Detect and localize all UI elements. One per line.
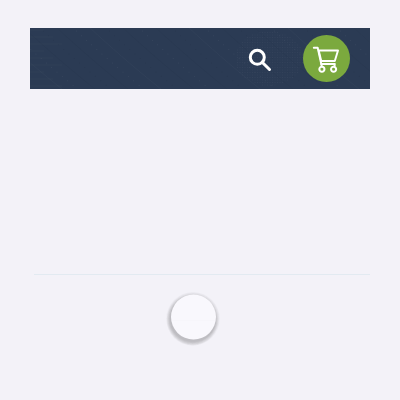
button[interactable]: Shopping cart bbox=[303, 35, 350, 82]
button[interactable]: Search bbox=[237, 37, 283, 83]
